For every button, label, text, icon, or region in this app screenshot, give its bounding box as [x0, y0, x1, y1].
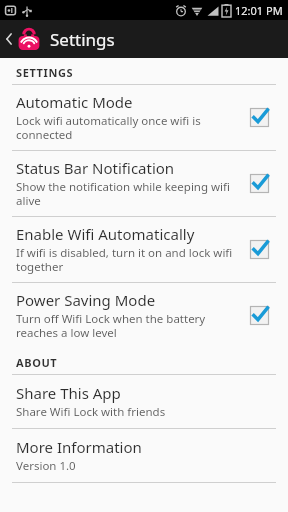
- button[interactable]: Share This App: [0, 375, 288, 428]
- staticText: SETTINGS: [16, 65, 74, 80]
- button[interactable]: Enable Wifi Automatically: [0, 217, 288, 282]
- staticText: More Information: [16, 437, 142, 457]
- staticText: Automatic Mode: [16, 92, 133, 112]
- staticText: Power Saving Mode: [16, 290, 156, 310]
- button[interactable]: Status Bar Notification: [0, 151, 288, 216]
- staticText: Share Wifi Lock with friends: [16, 404, 166, 420]
- staticText: Version 1.0: [16, 458, 76, 474]
- staticText: 12:01 PM: [235, 3, 283, 18]
- staticText: ABOUT: [16, 355, 58, 370]
- staticText: Share This App: [16, 383, 121, 403]
- staticText: Enable Wifi Automatically: [16, 224, 195, 244]
- button[interactable]: Navigate up: [0, 20, 48, 58]
- staticText: Status Bar Notification: [16, 158, 175, 178]
- staticText: Turn off Wifi Lock when the battery reac…: [16, 311, 234, 340]
- staticText: Lock wifi automatically once wifi is con…: [16, 113, 234, 142]
- button[interactable]: More Information: [0, 429, 288, 482]
- staticText: If wifi is disabled, turn it on and lock…: [16, 245, 234, 274]
- button[interactable]: Power Saving Mode: [0, 283, 288, 348]
- button[interactable]: Automatic Mode: [0, 85, 288, 150]
- staticText: Settings: [50, 28, 115, 51]
- staticText: Show the notification while keeping wifi…: [16, 179, 234, 208]
